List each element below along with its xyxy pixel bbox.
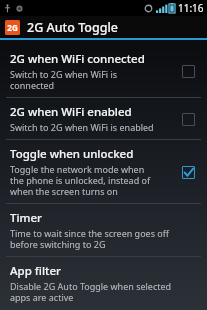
staticText: Disable 2G Auto Toggle when selected app… (10, 280, 172, 303)
button[interactable]: 2G when WiFi connected (0, 45, 207, 97)
staticText: Switch to 2G when WiFi is enabled (10, 121, 154, 133)
staticText: Toggle the network mode when the phone i… (10, 163, 151, 197)
button[interactable]: 2G when WiFi enabled (0, 98, 207, 139)
button[interactable]: Timer (0, 204, 207, 256)
staticText: Time to wait since the screen goes off b… (10, 227, 169, 250)
staticText: 11:16 (178, 1, 204, 15)
staticText: 2G (7, 22, 18, 33)
staticText: Toggle when unlocked (10, 146, 134, 162)
staticText: 2G Auto Toggle (27, 19, 119, 36)
button[interactable]: Toggle when unlocked (0, 140, 207, 203)
staticText: Switch to 2G when WiFi is connected (10, 68, 118, 91)
button[interactable]: 2G when WiFi enabled (177, 108, 199, 130)
staticText: 2G when WiFi enabled (10, 104, 132, 120)
staticText: 2G when WiFi connected (10, 51, 145, 67)
button[interactable]: Toggle when unlocked (177, 161, 199, 183)
button[interactable]: App filter (0, 257, 207, 309)
staticText: App filter (10, 263, 61, 279)
staticText: Timer (10, 210, 42, 226)
button[interactable]: 2G when WiFi connected (177, 60, 199, 82)
